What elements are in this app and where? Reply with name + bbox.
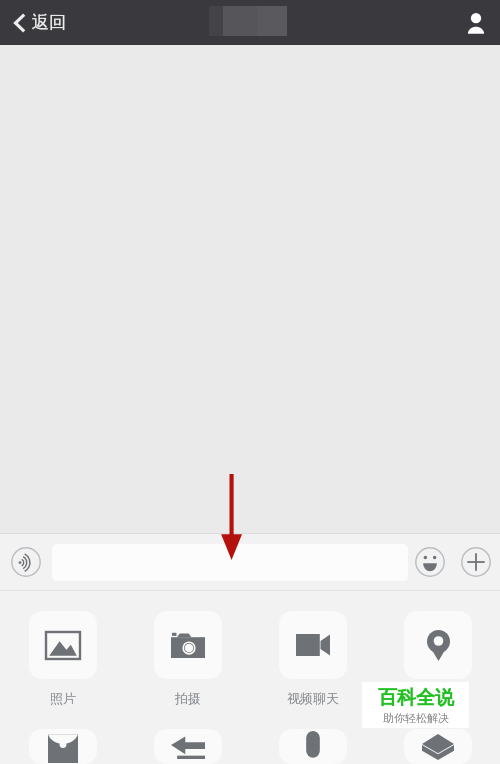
- button[interactable]: [52, 544, 408, 581]
- button[interactable]: 视频聊天: [250, 611, 375, 706]
- button[interactable]: [375, 729, 500, 764]
- button[interactable]: 返回: [14, 0, 66, 45]
- button[interactable]: 照片: [0, 611, 125, 706]
- button[interactable]: Emoji: [408, 534, 452, 590]
- button[interactable]: 拍摄: [125, 611, 250, 706]
- staticText: 位置: [425, 690, 451, 706]
- staticText: 视频聊天: [287, 690, 339, 706]
- staticText: 助你轻松解决: [383, 711, 449, 725]
- button[interactable]: [125, 729, 250, 764]
- staticText: 照片: [50, 690, 76, 706]
- button[interactable]: 位置: [375, 611, 500, 706]
- staticText: 拍摄: [175, 690, 201, 706]
- staticText: 百科全说: [378, 686, 454, 710]
- staticText: 返回: [32, 12, 66, 33]
- button[interactable]: Voice message: [0, 534, 52, 590]
- button[interactable]: [0, 729, 125, 764]
- button[interactable]: [250, 729, 375, 764]
- button[interactable]: More: [452, 534, 500, 590]
- button[interactable]: Contact info: [452, 0, 500, 45]
